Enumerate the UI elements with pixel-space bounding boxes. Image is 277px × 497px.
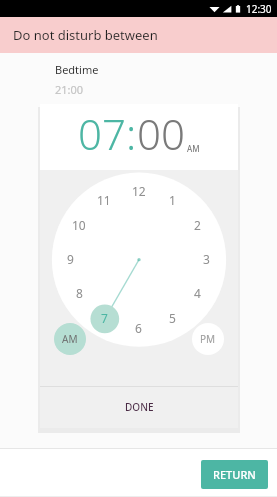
staticText: 8 bbox=[76, 285, 83, 301]
staticText: Do not disturb between bbox=[13, 26, 158, 44]
staticText: RETURN bbox=[213, 467, 256, 482]
button[interactable]: PM bbox=[192, 323, 224, 355]
staticText: AM bbox=[187, 143, 200, 154]
staticText: 7 bbox=[101, 310, 108, 326]
staticText: 9 bbox=[67, 251, 74, 267]
staticText: 10 bbox=[72, 217, 86, 233]
staticText: 21:00 bbox=[55, 82, 84, 97]
staticText: 12:30 bbox=[246, 2, 272, 16]
staticText: 12 bbox=[132, 183, 146, 199]
button[interactable]: RETURN bbox=[201, 460, 268, 489]
staticText: : bbox=[126, 105, 137, 162]
staticText: 5 bbox=[169, 310, 176, 326]
staticText: DONE bbox=[125, 400, 154, 414]
staticText: 00 bbox=[137, 105, 185, 162]
button[interactable]: DONE bbox=[103, 391, 176, 423]
button[interactable]: AM bbox=[54, 323, 86, 355]
staticText: 6 bbox=[135, 320, 142, 336]
staticText: 1 bbox=[169, 192, 176, 208]
staticText: AM bbox=[62, 332, 78, 346]
staticText: 4 bbox=[194, 285, 201, 301]
staticText: PM bbox=[200, 332, 216, 346]
button[interactable]: Do not disturb between bbox=[0, 17, 277, 53]
staticText: 07 bbox=[78, 105, 126, 162]
staticText: 11 bbox=[97, 192, 111, 208]
staticText: 2 bbox=[194, 217, 201, 233]
staticText: 3 bbox=[203, 251, 210, 267]
staticText: Bedtime bbox=[55, 62, 99, 77]
